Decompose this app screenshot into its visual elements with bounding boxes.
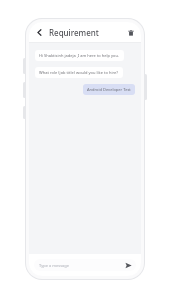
button[interactable]: Hi Shaktisinh jadeja ,I am here to help …: [35, 50, 124, 61]
staticText: What role (job title) would you like to …: [39, 70, 119, 75]
staticText: Type a message: [39, 263, 70, 268]
staticText: Hi Shaktisinh jadeja ,I am here to help …: [39, 53, 120, 58]
button[interactable]: Send: [124, 261, 133, 270]
button[interactable]: Back: [33, 26, 46, 39]
button[interactable]: Delete: [124, 26, 137, 39]
staticText: Requirement: [49, 27, 99, 38]
button[interactable]: Type a message: [34, 259, 136, 271]
button[interactable]: What role (job title) would you like to …: [35, 67, 123, 78]
staticText: Android Developer Test: [87, 87, 131, 92]
button[interactable]: Android Developer Test: [83, 84, 135, 95]
